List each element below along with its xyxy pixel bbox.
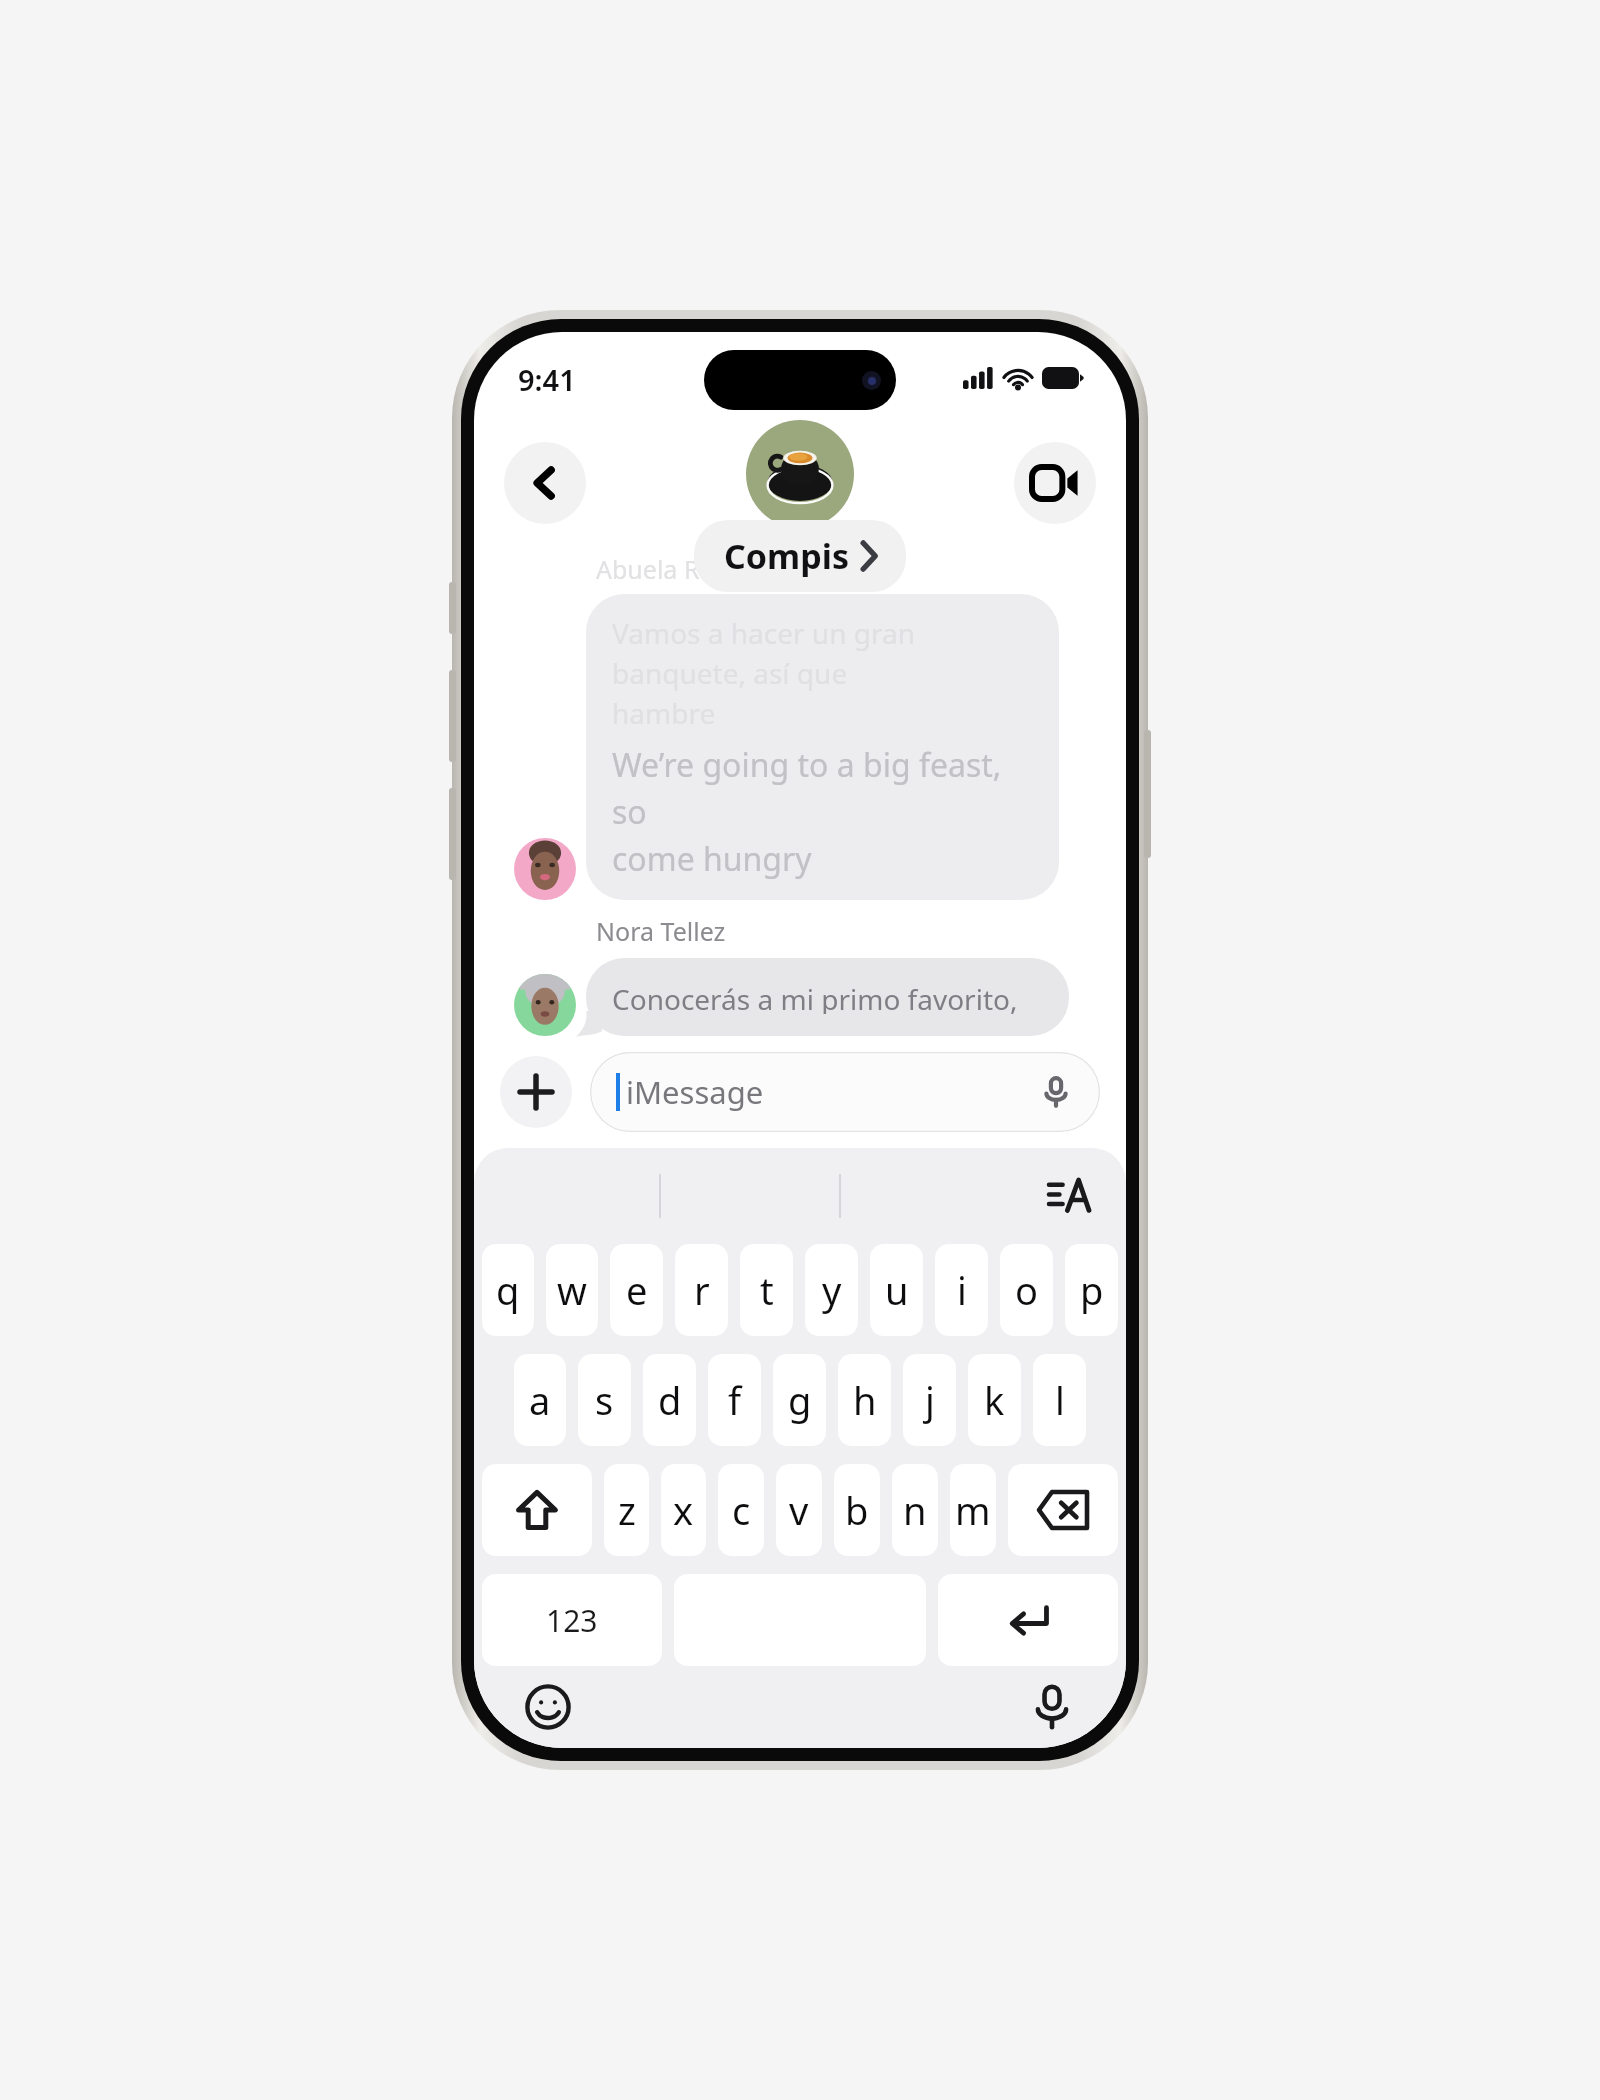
button[interactable]: x (661, 1464, 706, 1556)
staticText: Vamos a hacer un gran banquete, así que … (612, 614, 1033, 733)
button[interactable]: Add attachment (500, 1056, 572, 1128)
button[interactable]: Emoji (518, 1677, 578, 1737)
staticText: y (822, 1264, 842, 1316)
staticText: q (496, 1264, 520, 1316)
button[interactable]: Return (938, 1574, 1118, 1666)
button[interactable]: Group photo (746, 420, 854, 528)
button[interactable]: l (1033, 1354, 1086, 1446)
button[interactable]: q (482, 1244, 534, 1336)
button[interactable]: m (950, 1464, 996, 1556)
staticText: u (885, 1264, 909, 1316)
button[interactable]: Formatting (1042, 1169, 1096, 1223)
button[interactable]: v (776, 1464, 822, 1556)
button[interactable]: i (935, 1244, 988, 1336)
staticText: s (595, 1374, 614, 1426)
staticText: n (903, 1484, 927, 1536)
button[interactable]: k (968, 1354, 1021, 1446)
button[interactable]: o (1000, 1244, 1053, 1336)
button[interactable]: u (870, 1244, 923, 1336)
staticText: x (673, 1484, 694, 1536)
button[interactable]: 123 (482, 1574, 662, 1666)
staticText: j (925, 1374, 935, 1426)
staticText: t (760, 1264, 774, 1316)
staticText: l (1055, 1374, 1065, 1426)
staticText: Abuela Rosita (596, 552, 757, 586)
button[interactable]: y (805, 1244, 858, 1336)
staticText: d (658, 1374, 682, 1426)
button[interactable]: p (1065, 1244, 1118, 1336)
button[interactable]: g (773, 1354, 826, 1446)
staticText: r (694, 1264, 710, 1316)
staticText: We’re going to a big feast, so come hung… (612, 743, 1033, 880)
button[interactable]: Conocerás a mi primo favorito, Dice que … (586, 958, 1069, 1036)
staticText: a (529, 1374, 551, 1426)
button[interactable]: w (546, 1244, 598, 1336)
staticText: e (626, 1264, 648, 1316)
staticText: Conocerás a mi primo favorito, Dice que … (612, 980, 1043, 1014)
staticText: iMessage (626, 1071, 764, 1113)
staticText: z (618, 1484, 636, 1536)
button[interactable]: e (610, 1244, 663, 1336)
button[interactable]: Dictation (1022, 1677, 1082, 1737)
button[interactable]: h (838, 1354, 891, 1446)
button[interactable]: Compis (694, 520, 906, 592)
button[interactable]: n (892, 1464, 938, 1556)
button[interactable]: c (718, 1464, 764, 1556)
button[interactable]: Shift (482, 1464, 592, 1556)
button[interactable]: Dictate (1038, 1074, 1074, 1110)
button[interactable]: Backspace (1008, 1464, 1118, 1556)
staticText: c (732, 1484, 751, 1536)
staticText: h (853, 1374, 877, 1426)
button[interactable]: d (643, 1354, 696, 1446)
staticText: o (1015, 1264, 1038, 1316)
button[interactable]: b (834, 1464, 880, 1556)
button[interactable]: Back (504, 442, 586, 524)
button[interactable]: t (740, 1244, 793, 1336)
staticText: 9:41 (518, 360, 576, 399)
staticText: Compis (724, 533, 849, 579)
staticText: w (557, 1264, 587, 1316)
staticText: p (1080, 1264, 1104, 1316)
button[interactable]: FaceTime video call (1014, 442, 1096, 524)
staticText: k (984, 1374, 1005, 1426)
staticText: g (788, 1374, 812, 1426)
staticText: i (957, 1264, 967, 1316)
button[interactable]: f (708, 1354, 761, 1446)
staticText: f (728, 1374, 742, 1426)
button[interactable]: z (604, 1464, 649, 1556)
button[interactable]: a (514, 1354, 566, 1446)
button[interactable]: j (903, 1354, 956, 1446)
staticText: m (955, 1484, 991, 1536)
staticText: b (845, 1484, 869, 1536)
button[interactable]: r (675, 1244, 728, 1336)
button[interactable]: iMessage (590, 1052, 1100, 1132)
staticText: v (789, 1484, 809, 1536)
button[interactable]: s (578, 1354, 631, 1446)
staticText: 123 (546, 1600, 598, 1641)
staticText: Nora Tellez (596, 914, 726, 948)
